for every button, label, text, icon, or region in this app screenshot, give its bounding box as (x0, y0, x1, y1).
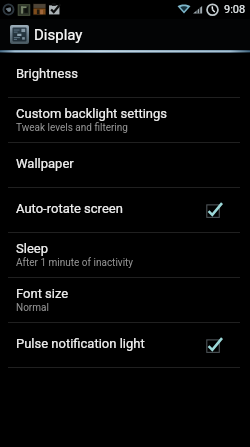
button[interactable]: Brightness (0, 53, 250, 97)
button[interactable]: Font size (0, 278, 250, 322)
button[interactable]: Custom backlight settings (0, 98, 250, 142)
staticText: Brightness (16, 66, 78, 81)
staticText: 9:08 (224, 3, 246, 16)
staticText: Pulse notification light (16, 336, 145, 351)
staticText: Auto-rotate screen (16, 201, 123, 216)
staticText: Custom backlight settings (16, 106, 167, 121)
staticText: Font size (16, 286, 69, 301)
button[interactable]: Sleep (0, 233, 250, 277)
staticText: Sleep (16, 241, 48, 256)
staticText: Normal (16, 302, 49, 314)
button[interactable]: Pulse notification light (0, 323, 250, 367)
staticText: Wallpaper (16, 156, 74, 171)
staticText: Tweak levels and filtering (16, 122, 128, 134)
button[interactable]: Auto-rotate screen (0, 188, 250, 232)
staticText: Display (34, 26, 83, 44)
button[interactable]: Display (0, 19, 250, 50)
button[interactable]: Wallpaper (0, 143, 250, 187)
staticText: After 1 minute of inactivity (16, 257, 134, 269)
